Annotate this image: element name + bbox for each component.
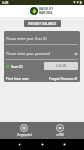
staticText: Please enter your User ID [6,36,47,41]
staticText: mPIN [56,133,64,137]
staticText: BARODA [39,11,53,15]
staticText: BANK OF [39,7,54,11]
staticText: 4:28 [2,1,9,5]
staticText: Please enter your password [6,51,51,56]
staticText: Fingerprint [17,133,32,137]
other: Show password [74,52,78,56]
staticText: INSTANT BALANCE [28,22,57,26]
button[interactable]: INSTANT BALANCE [24,20,61,27]
button[interactable]: mPIN [48,122,72,139]
button[interactable]: LOG IN [44,62,78,70]
button[interactable]: Fingerprint [12,122,36,139]
button[interactable]: First time user [6,76,29,81]
other: Home [40,142,45,147]
button[interactable]: Forgot Password? [49,76,78,81]
staticText: Save ID [11,64,23,69]
other: mPIN [56,124,64,132]
other: Back [17,142,22,147]
other: Recents [62,142,67,147]
staticText: LOG IN [56,64,67,68]
button[interactable]: Save ID [6,64,23,69]
other: Fingerprint [20,124,28,132]
